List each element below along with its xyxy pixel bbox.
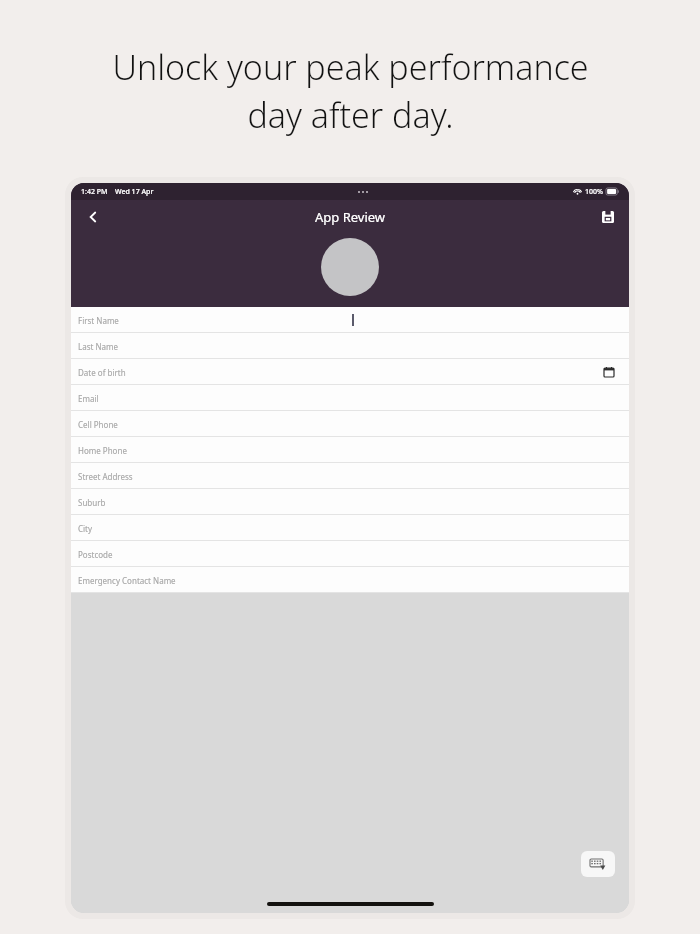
staticText: Cell Phone: [78, 419, 118, 430]
button[interactable]: Save: [595, 204, 621, 230]
staticText: Street Address: [78, 471, 133, 482]
staticText: 1:42 PM: [81, 187, 108, 197]
button[interactable]: Home Phone: [71, 437, 629, 463]
staticText: day after day.: [247, 92, 454, 138]
button[interactable]: First Name: [71, 307, 629, 333]
staticText: City: [78, 523, 93, 534]
button[interactable]: Date of birth: [71, 359, 629, 385]
button[interactable]: Cell Phone: [71, 411, 629, 437]
staticText: Unlock your peak performance: [112, 44, 589, 90]
staticText: Suburb: [78, 497, 106, 508]
staticText: Email: [78, 393, 99, 404]
staticText: Home Phone: [78, 445, 127, 456]
staticText: 100%: [585, 187, 603, 197]
staticText: Postcode: [78, 549, 113, 560]
button[interactable]: Postcode: [71, 541, 629, 567]
button[interactable]: Last Name: [71, 333, 629, 359]
staticText: Date of birth: [78, 367, 126, 378]
staticText: Wed 17 Apr: [115, 187, 154, 197]
button[interactable]: Profile photo: [321, 238, 379, 296]
button[interactable]: Pick date: [601, 364, 617, 380]
button[interactable]: Back: [79, 203, 107, 231]
button[interactable]: Email: [71, 385, 629, 411]
staticText: First Name: [78, 315, 119, 326]
button[interactable]: Street Address: [71, 463, 629, 489]
button[interactable]: City: [71, 515, 629, 541]
button[interactable]: Suburb: [71, 489, 629, 515]
button[interactable]: Emergency Contact Name: [71, 567, 629, 593]
staticText: App Review: [315, 208, 386, 226]
staticText: Emergency Contact Name: [78, 575, 176, 586]
button[interactable]: Hide keyboard: [581, 851, 615, 877]
staticText: Last Name: [78, 341, 119, 352]
